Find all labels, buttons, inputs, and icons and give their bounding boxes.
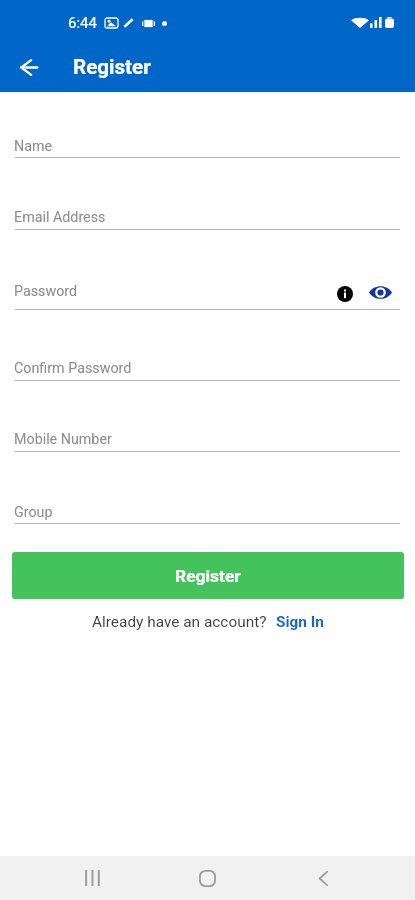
button[interactable]: Register (12, 552, 404, 599)
staticText: 6:44 (68, 14, 97, 32)
staticText: Password (14, 283, 78, 300)
button[interactable]: Password (15, 277, 400, 311)
button[interactable]: Back (295, 856, 351, 900)
button[interactable]: Mobile Number (15, 425, 400, 452)
staticText: Confirm Password (14, 360, 132, 377)
button[interactable]: Name (15, 132, 400, 159)
staticText: Name (14, 138, 53, 155)
staticText: Sign In (276, 613, 324, 631)
staticText: Register (73, 55, 151, 79)
staticText: Email Address (14, 209, 106, 226)
button[interactable]: Group (15, 498, 400, 525)
staticText: Group (14, 504, 53, 521)
staticText: Mobile Number (14, 431, 112, 448)
button[interactable]: Show password (368, 284, 392, 300)
button[interactable]: Recent apps (63, 856, 119, 900)
button[interactable]: Email Address (15, 203, 400, 230)
button[interactable]: Back (8, 46, 50, 88)
button[interactable]: Password requirements info (337, 286, 353, 302)
staticText: Register (175, 566, 241, 586)
button[interactable]: Home (179, 856, 235, 900)
button[interactable]: Confirm Password (15, 354, 400, 381)
button[interactable]: Sign In (276, 613, 324, 631)
staticText: Already have an account? (92, 613, 267, 631)
